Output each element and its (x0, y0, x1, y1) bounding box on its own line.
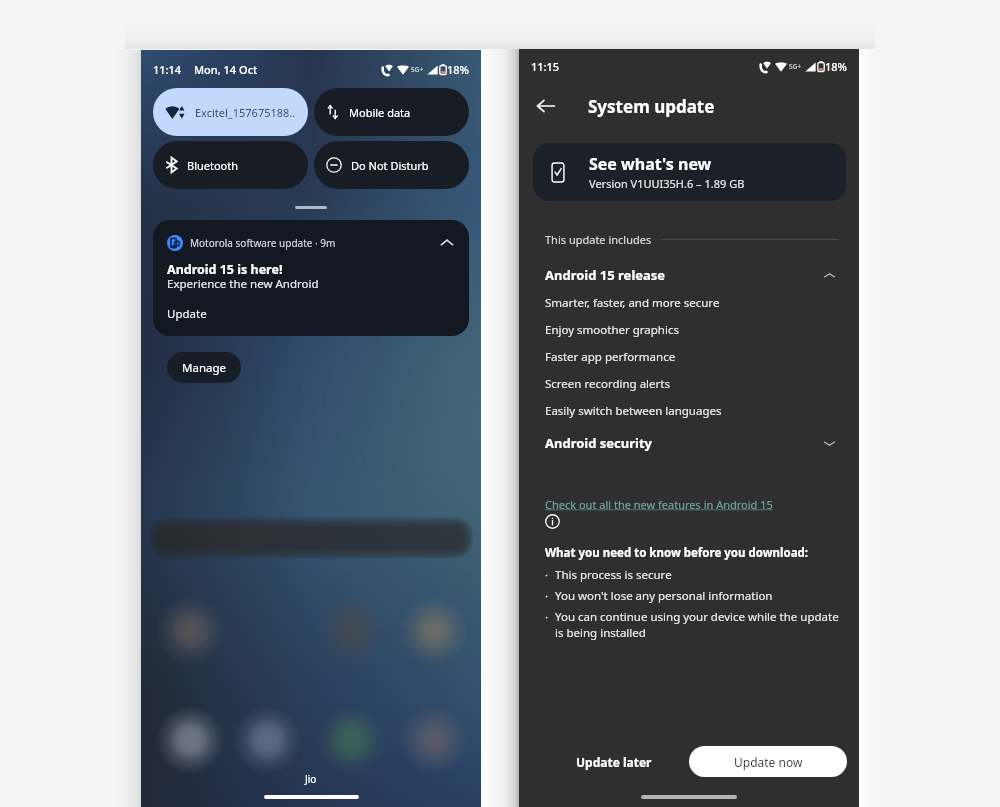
staticText: 18% (447, 62, 469, 77)
staticText: Excitel_157675188.. (195, 105, 296, 120)
staticText: Faster app performance (545, 349, 676, 365)
staticText: 5G+ (789, 62, 802, 71)
staticText: Enjoy smoother graphics (545, 322, 679, 338)
button[interactable]: Mobile data (314, 88, 469, 136)
button[interactable]: Excitel_157675188.. (153, 88, 308, 136)
staticText: This process is secure (555, 567, 672, 583)
staticText: What you need to know before you downloa… (545, 545, 809, 561)
button[interactable]: Collapse notification (438, 234, 457, 252)
staticText: Update now (734, 754, 803, 770)
staticText: Mon, 14 Oct (194, 62, 258, 77)
staticText: You can continue using your device while… (555, 609, 839, 640)
staticText: Android 15 is here! (167, 261, 283, 278)
staticText: 5G+ (411, 65, 424, 74)
button[interactable]: Manage (167, 352, 241, 383)
button[interactable]: More information (545, 514, 560, 529)
staticText: System update (588, 95, 715, 118)
staticText: Manage (182, 360, 226, 376)
button[interactable]: Motorola software update · 9m (153, 220, 469, 336)
staticText: Android security (545, 434, 653, 452)
staticText: Version V1UUI35H.6 – 1.89 GB (589, 176, 745, 191)
staticText: · (545, 609, 549, 625)
button[interactable]: Bluetooth (153, 141, 308, 189)
staticText: This update includes (545, 232, 652, 247)
staticText: Do Not Disturb (351, 158, 429, 173)
staticText: Smarter, faster, and more secure (545, 295, 720, 311)
button[interactable]: Update now (689, 746, 847, 777)
staticText: Easily switch between languages (545, 403, 722, 419)
button[interactable]: Update (167, 306, 207, 322)
staticText: You won't lose any personal information (555, 588, 773, 604)
staticText: · (545, 567, 549, 583)
staticText: See what's new (589, 153, 712, 175)
button[interactable]: Update later (576, 754, 652, 770)
staticText: 11:15 (531, 59, 560, 74)
button[interactable]: Android 15 release (519, 265, 859, 285)
staticText: Jio (305, 772, 317, 786)
button[interactable]: Android security (519, 433, 859, 453)
button[interactable]: Back (536, 96, 556, 116)
staticText: Experience the new Android (167, 276, 319, 292)
staticText: Motorola software update · 9m (190, 236, 336, 250)
staticText: 11:14 (153, 62, 182, 77)
staticText: Screen recording alerts (545, 376, 670, 392)
staticText: Android 15 release (545, 266, 666, 284)
staticText: Mobile data (349, 105, 411, 120)
staticText: Bluetooth (187, 158, 239, 173)
button[interactable]: See what's new (533, 143, 846, 201)
button[interactable]: Do Not Disturb (314, 141, 469, 189)
button[interactable]: Check out all the new features in Androi… (545, 497, 773, 512)
staticText: 18% (825, 59, 847, 74)
staticText: · (545, 588, 549, 604)
